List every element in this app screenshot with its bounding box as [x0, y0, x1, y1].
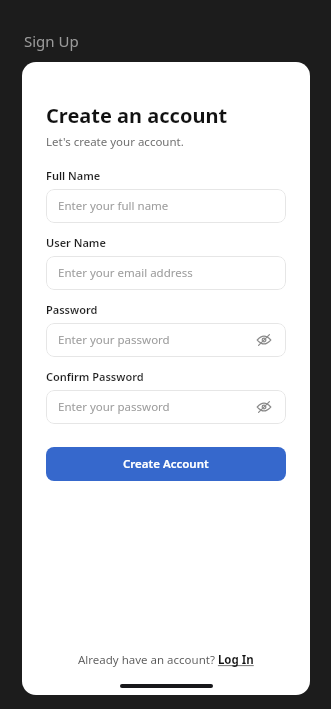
staticText: Full Name	[46, 168, 101, 183]
staticText: Already have an account? Log In	[78, 652, 254, 668]
staticText: Sign Up	[24, 31, 79, 51]
staticText: Enter your password	[58, 399, 170, 415]
staticText: User Name	[46, 235, 106, 250]
staticText: Create an account	[46, 102, 228, 129]
staticText: Password	[46, 302, 98, 317]
button[interactable]: Enter your email address	[46, 256, 286, 290]
button[interactable]: Already have an account? Log In	[46, 652, 286, 668]
staticText: Confirm Password	[46, 369, 144, 384]
button[interactable]: Create Account	[46, 447, 286, 481]
staticText: Let's create your account.	[46, 134, 184, 150]
button[interactable]: Show password	[254, 397, 274, 417]
staticText: Enter your full name	[58, 198, 169, 214]
button[interactable]: Show password	[254, 330, 274, 350]
staticText: Enter your password	[58, 332, 170, 348]
button[interactable]: Enter your password	[46, 390, 286, 424]
button[interactable]: Enter your password	[46, 323, 286, 357]
button[interactable]: Enter your full name	[46, 189, 286, 223]
staticText: Enter your email address	[58, 265, 193, 281]
staticText: Create Account	[123, 456, 209, 472]
